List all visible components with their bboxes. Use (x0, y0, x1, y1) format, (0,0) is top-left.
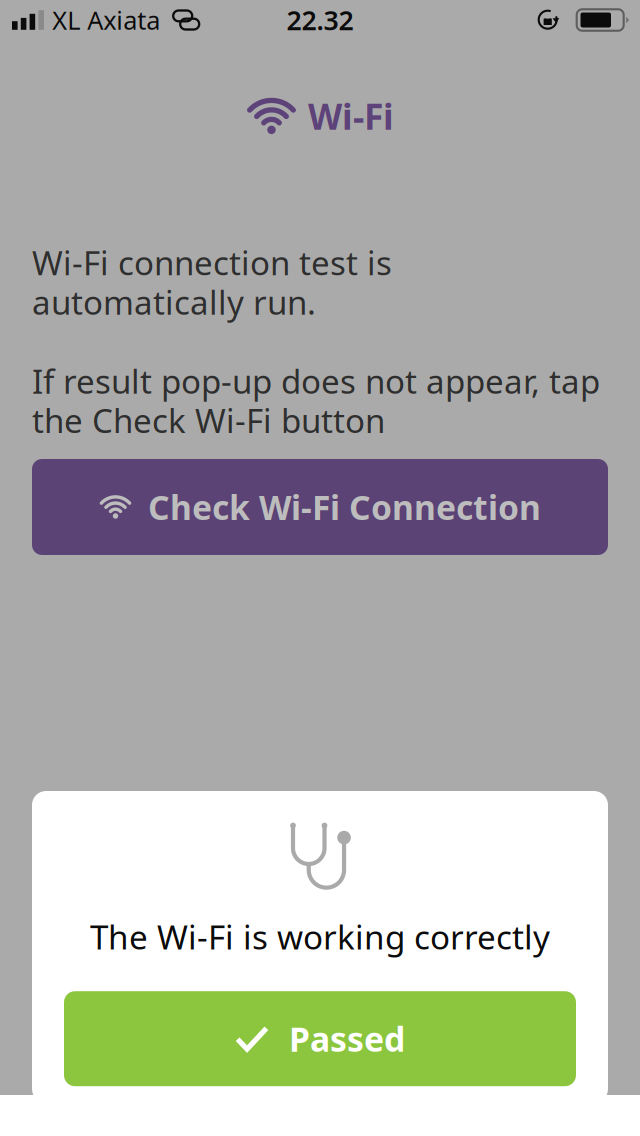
staticText: Passed (289, 1016, 405, 1062)
button[interactable]: Check Wi-Fi Connection (32, 459, 608, 555)
button[interactable]: Passed (64, 991, 576, 1086)
staticText: Wi-Fi connection test is automatically r… (32, 240, 600, 443)
staticText: XL Axiata (52, 3, 160, 37)
button[interactable]: Wi-Fi (246, 98, 394, 134)
staticText: Wi-Fi (308, 92, 394, 140)
staticText: The Wi-Fi is working correctly (90, 914, 550, 959)
staticText: Check Wi-Fi Connection (148, 484, 541, 530)
staticText: 22.32 (286, 2, 353, 38)
